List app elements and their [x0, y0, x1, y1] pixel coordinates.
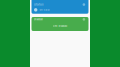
staticText: My status: [39, 9, 49, 11]
staticText: New broadcast: [52, 25, 67, 27]
button[interactable]: Broadcast: [31, 17, 88, 31]
staticText: Status: [34, 3, 43, 6]
button[interactable]: Status: [31, 0, 88, 14]
staticText: Broadcast: [34, 18, 43, 21]
